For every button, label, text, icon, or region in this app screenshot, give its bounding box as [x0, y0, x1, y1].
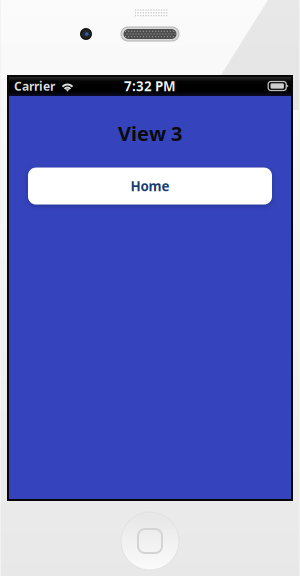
- staticText: Carrier: [14, 78, 55, 94]
- staticText: 7:32 PM: [124, 77, 176, 95]
- button[interactable]: Home: [28, 168, 272, 205]
- staticText: Home: [130, 177, 169, 195]
- button[interactable]: Home button: [121, 512, 179, 570]
- staticText: View 3: [118, 120, 182, 147]
